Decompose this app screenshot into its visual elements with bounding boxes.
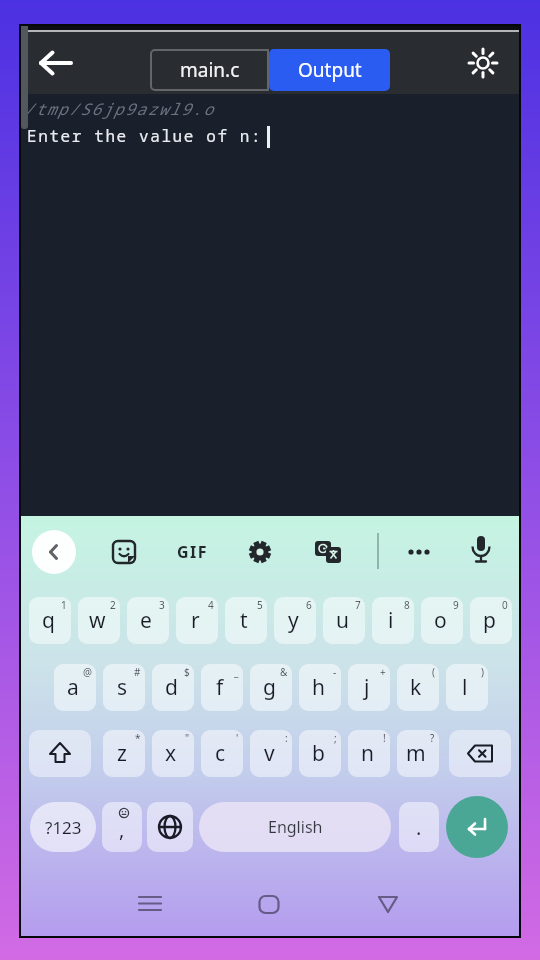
staticText: 6 — [306, 598, 312, 612]
staticText: ! — [383, 731, 386, 745]
button[interactable]: c — [201, 730, 243, 777]
button[interactable]: main.c — [150, 49, 269, 91]
staticText: main.c — [180, 57, 240, 83]
button[interactable]: l — [446, 664, 488, 711]
button[interactable]: GIF — [171, 530, 215, 574]
button[interactable]: s — [103, 664, 145, 711]
button[interactable]: v — [250, 730, 292, 777]
button[interactable] — [129, 883, 171, 925]
staticText: & — [280, 665, 288, 679]
staticText: ( — [432, 665, 435, 679]
staticText: . — [416, 814, 422, 841]
staticText: Output — [298, 57, 362, 83]
staticText: 0 — [502, 598, 508, 612]
staticText: n — [361, 739, 374, 768]
staticText: q — [42, 606, 55, 635]
button[interactable] — [463, 43, 503, 83]
button[interactable]: e — [127, 597, 169, 644]
staticText: m — [406, 739, 426, 768]
staticText: h — [312, 673, 325, 702]
staticText: d — [165, 673, 178, 702]
staticText: , — [119, 816, 125, 843]
staticText: x — [165, 739, 177, 768]
staticText: ) — [481, 665, 484, 679]
staticText: a — [67, 673, 79, 702]
button[interactable]: t — [225, 597, 267, 644]
staticText: f — [216, 673, 224, 702]
button[interactable]: a — [54, 664, 96, 711]
staticText: w — [89, 606, 106, 635]
staticText: b — [312, 739, 325, 768]
staticText: GIF — [177, 541, 209, 563]
button[interactable]: n — [348, 730, 390, 777]
button[interactable] — [449, 730, 511, 777]
staticText: i — [388, 606, 394, 635]
staticText: c — [215, 739, 226, 768]
button[interactable] — [35, 43, 75, 83]
staticText: 7 — [355, 598, 361, 612]
button[interactable] — [32, 530, 76, 574]
staticText: ' — [236, 731, 239, 745]
button[interactable]: k — [397, 664, 439, 711]
staticText: u — [336, 606, 349, 635]
button[interactable] — [446, 796, 508, 858]
staticText: ?123 — [45, 816, 82, 839]
button[interactable] — [459, 528, 503, 572]
staticText: e — [140, 606, 152, 635]
staticText: _ — [234, 665, 239, 679]
button[interactable]: u — [323, 597, 365, 644]
button[interactable]: x — [152, 730, 194, 777]
staticText: : — [285, 731, 288, 745]
button[interactable]: h — [299, 664, 341, 711]
button[interactable]: d — [152, 664, 194, 711]
staticText: " — [185, 731, 190, 745]
staticText: * — [135, 731, 141, 745]
staticText: @ — [83, 665, 92, 679]
button[interactable] — [102, 530, 146, 574]
staticText: t — [240, 606, 248, 635]
staticText: 5 — [257, 598, 263, 612]
button[interactable] — [306, 530, 350, 574]
staticText: y — [288, 606, 299, 635]
button[interactable] — [398, 530, 442, 574]
button[interactable] — [29, 730, 91, 777]
button[interactable]: o — [421, 597, 463, 644]
button[interactable]: English — [199, 802, 391, 852]
button[interactable]: g — [250, 664, 292, 711]
button[interactable] — [147, 802, 193, 852]
staticText: s — [117, 673, 128, 702]
staticText: /tmp/S6jp9azwl9.o — [24, 98, 215, 120]
staticText: o — [434, 606, 447, 635]
staticText: $ — [184, 665, 190, 679]
button[interactable]: f — [201, 664, 243, 711]
button[interactable]: q — [29, 597, 71, 644]
button[interactable]: j — [348, 664, 390, 711]
staticText: g — [263, 673, 276, 702]
staticText: 2 — [110, 598, 116, 612]
button[interactable]: w — [78, 597, 120, 644]
button[interactable]: r — [176, 597, 218, 644]
button[interactable]: ?123 — [30, 802, 96, 852]
staticText: ? — [430, 731, 435, 745]
button[interactable]: p — [470, 597, 512, 644]
staticText: + — [380, 665, 386, 679]
button[interactable] — [367, 883, 409, 925]
staticText: k — [410, 673, 422, 702]
button[interactable]: , — [102, 802, 142, 852]
button[interactable]: Output — [269, 49, 390, 91]
staticText: p — [483, 606, 496, 635]
staticText: # — [134, 665, 141, 679]
button[interactable] — [238, 530, 282, 574]
button[interactable]: y — [274, 597, 316, 644]
button[interactable]: i — [372, 597, 414, 644]
button[interactable]: m — [397, 730, 439, 777]
button[interactable]: b — [299, 730, 341, 777]
staticText: 1 — [61, 598, 67, 612]
button[interactable] — [248, 883, 290, 925]
button[interactable]: . — [399, 802, 439, 852]
staticText: English — [268, 816, 323, 838]
button[interactable]: z — [103, 730, 145, 777]
staticText: - — [333, 665, 337, 679]
staticText: 8 — [404, 598, 410, 612]
staticText: l — [462, 673, 468, 702]
